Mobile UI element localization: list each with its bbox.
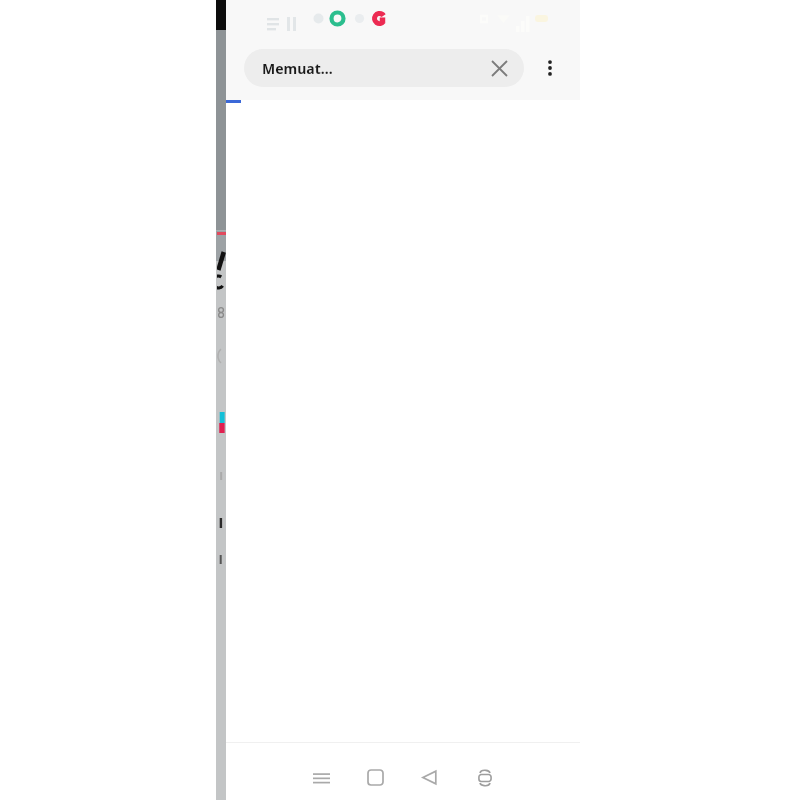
- button[interactable]: Memuat...: [244, 49, 524, 87]
- staticText: Memuat...: [262, 59, 333, 78]
- button[interactable]: Recent apps: [294, 755, 348, 800]
- button[interactable]: Forward: [307, 743, 372, 800]
- button[interactable]: Stop loading: [484, 53, 514, 83]
- button[interactable]: Home: [348, 755, 402, 800]
- button[interactable]: Menu: [372, 743, 436, 800]
- button[interactable]: Back: [402, 755, 457, 800]
- button[interactable]: More options: [528, 46, 572, 90]
- button[interactable]: Hide navigation bar: [457, 755, 512, 800]
- button[interactable]: Tabs, 12 open: [436, 743, 500, 800]
